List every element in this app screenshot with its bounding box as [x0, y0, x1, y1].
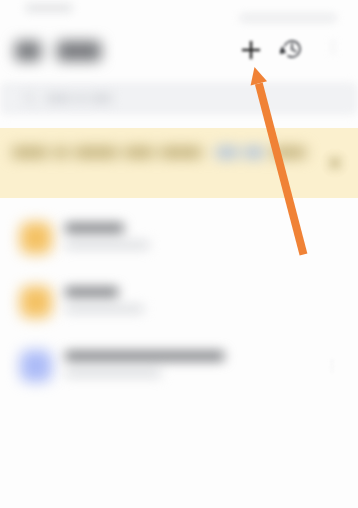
button[interactable]: [0, 270, 358, 334]
button[interactable]: Dismiss: [320, 148, 350, 178]
button[interactable]: Dismiss: [0, 128, 358, 198]
button[interactable]: Add: [229, 28, 273, 72]
button[interactable]: More: [0, 334, 358, 398]
button[interactable]: History: [270, 28, 312, 70]
button[interactable]: [0, 206, 358, 270]
button[interactable]: [0, 82, 358, 115]
